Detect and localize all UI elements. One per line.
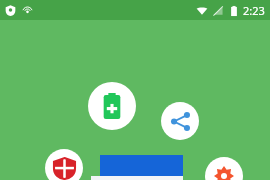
button[interactable]: Security [45, 149, 83, 180]
button[interactable]: Settings [205, 157, 243, 180]
button[interactable]: Battery saver [88, 82, 136, 130]
button[interactable]: Share [161, 102, 199, 140]
staticText: 2:23 [243, 3, 265, 18]
